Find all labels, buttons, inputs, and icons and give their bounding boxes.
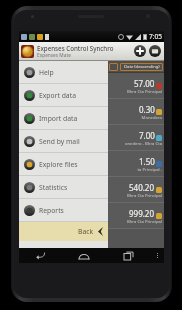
staticText: Date (descending) bbox=[124, 64, 160, 70]
button[interactable]: Statistics bbox=[19, 176, 108, 198]
button[interactable]: Back bbox=[19, 222, 108, 241]
button[interactable]: Date (descending) bbox=[120, 63, 163, 71]
staticText: Expenses Mate bbox=[37, 52, 71, 59]
staticText: 540.20 bbox=[129, 182, 155, 193]
button[interactable]: 57.00 bbox=[108, 73, 164, 98]
button[interactable]: Home bbox=[62, 248, 106, 263]
staticText: Bhra Cta Principal bbox=[126, 89, 162, 95]
button[interactable]: More options bbox=[150, 248, 164, 263]
staticText: Send by mail bbox=[39, 137, 80, 146]
staticText: Back bbox=[78, 227, 94, 236]
staticText: Reports bbox=[39, 206, 64, 215]
staticText: onedero - Bhra Cta Principal bbox=[108, 141, 162, 147]
staticText: 7:05 bbox=[149, 32, 162, 41]
staticText: 7.00 bbox=[139, 130, 155, 141]
button[interactable]: 0.30 bbox=[108, 99, 164, 124]
button[interactable]: Reports bbox=[19, 199, 108, 221]
staticText: Bhra Cta Principal bbox=[126, 219, 162, 225]
button[interactable]: Export data bbox=[19, 84, 108, 106]
button[interactable]: Explore files bbox=[19, 153, 108, 175]
button[interactable]: Help bbox=[19, 61, 108, 83]
button[interactable]: Recents bbox=[106, 248, 150, 263]
staticText: 1.50 bbox=[139, 156, 155, 167]
button[interactable]: 7.00 bbox=[108, 125, 164, 150]
button[interactable]: 540.20 bbox=[108, 177, 164, 202]
staticText: Bhra Cta Principal bbox=[126, 193, 162, 199]
button[interactable]: Files bbox=[148, 44, 162, 58]
button[interactable]: 999.20 bbox=[108, 203, 164, 228]
staticText: Import data bbox=[39, 114, 78, 123]
staticText: ta Principal - Credito,Credito bbox=[108, 167, 162, 173]
staticText: Statistics bbox=[39, 183, 68, 192]
button[interactable]: Add bbox=[133, 44, 147, 58]
staticText: 999.20 bbox=[129, 208, 155, 219]
staticText: Expenses Control Synchro bbox=[37, 44, 114, 52]
button[interactable]: Filter bbox=[109, 63, 118, 71]
button[interactable]: 1.50 bbox=[108, 151, 164, 176]
button[interactable]: Import data bbox=[19, 107, 108, 129]
staticText: Monedero bbox=[141, 115, 162, 121]
staticText: Help bbox=[39, 68, 54, 77]
staticText: Export data bbox=[39, 91, 76, 100]
button[interactable]: Back bbox=[19, 248, 62, 263]
staticText: Explore files bbox=[39, 160, 78, 169]
staticText: 57.00 bbox=[134, 78, 155, 89]
button[interactable]: Send by mail bbox=[19, 130, 108, 152]
staticText: 0.30 bbox=[139, 104, 155, 115]
